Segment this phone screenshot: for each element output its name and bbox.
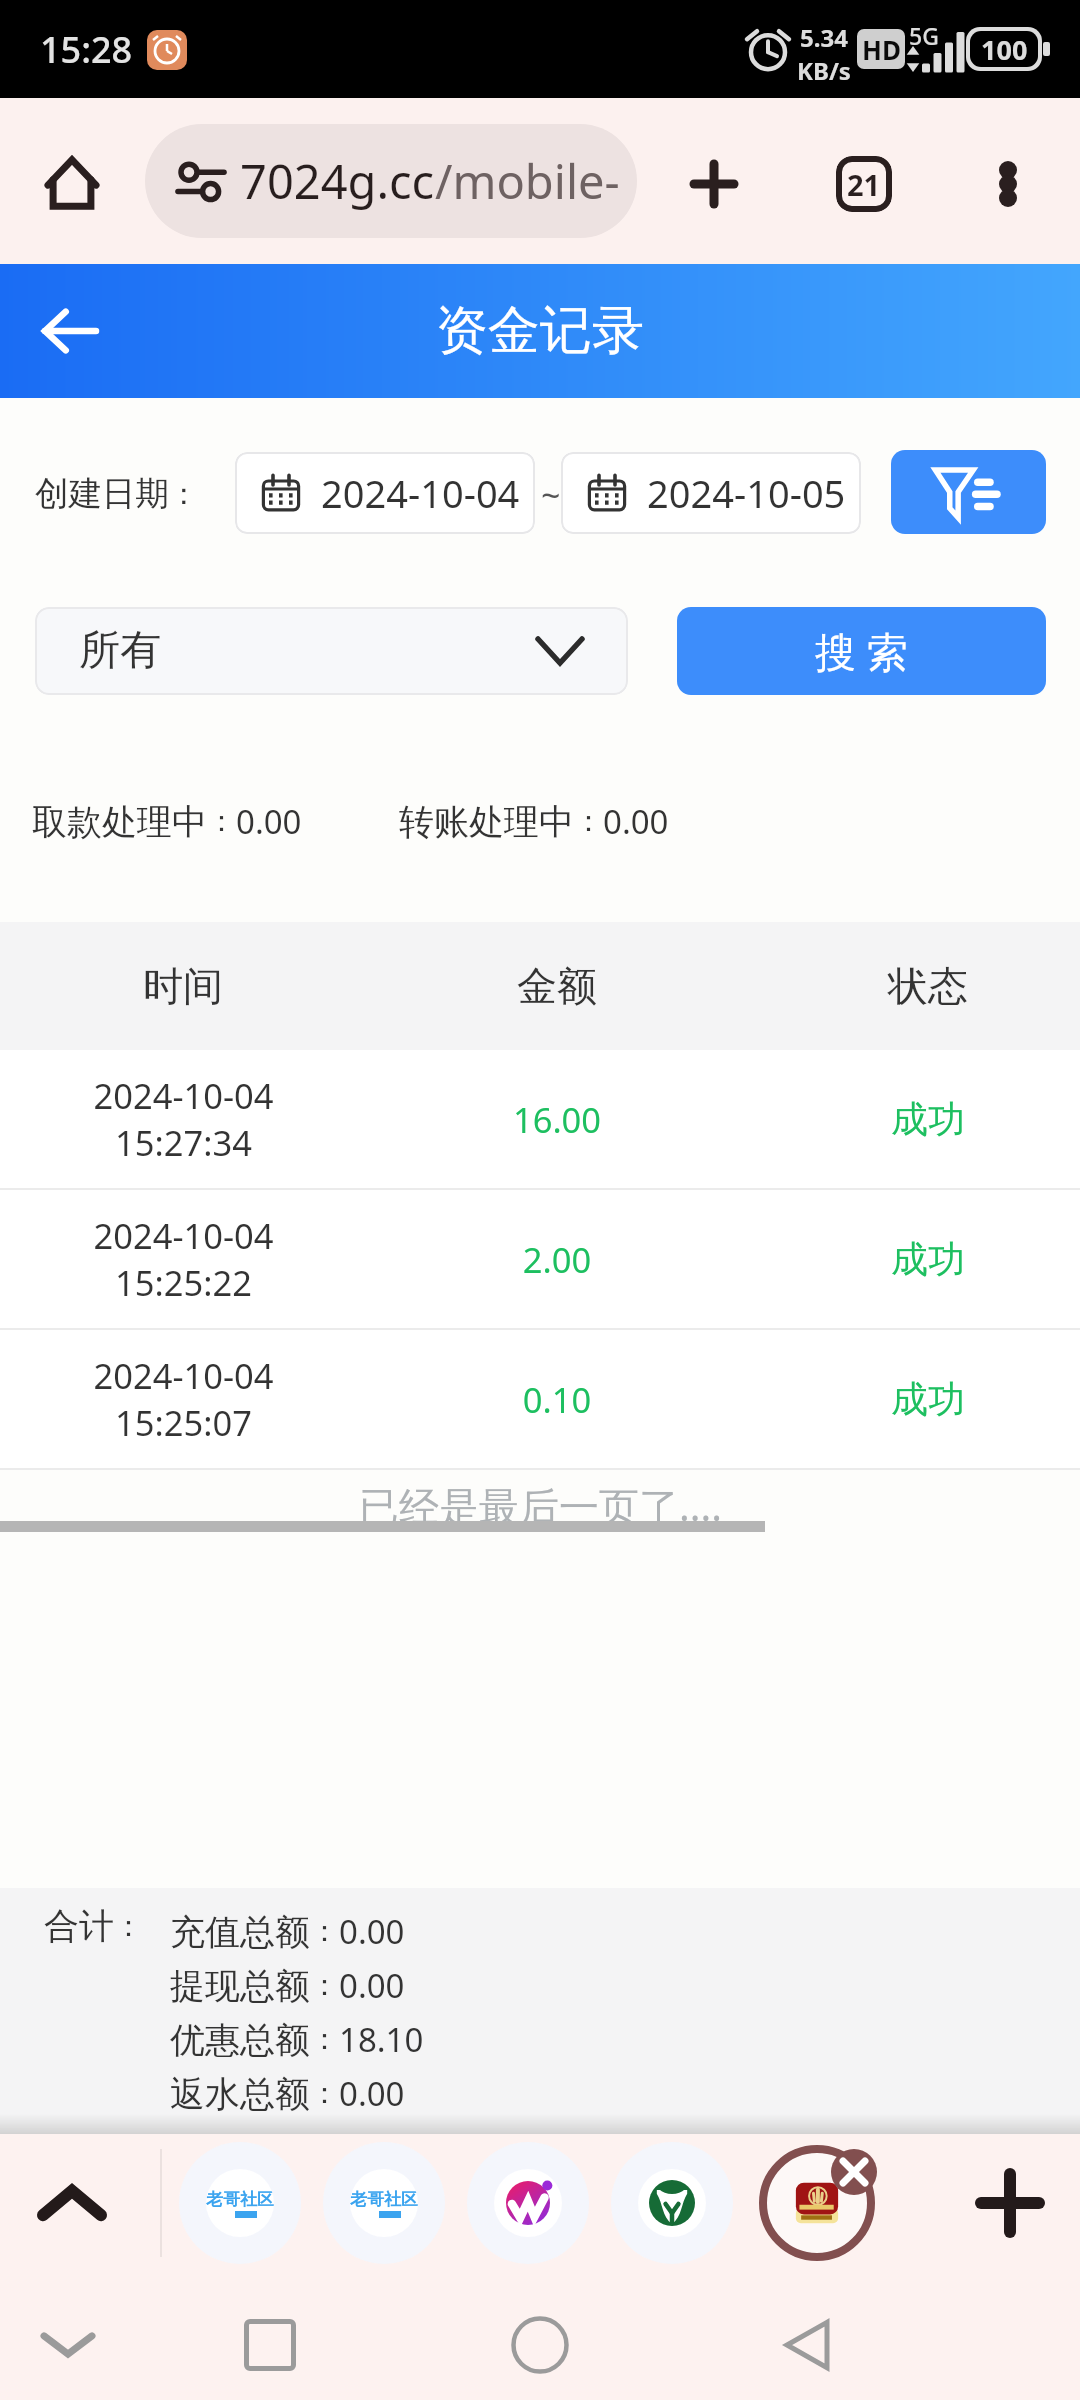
- staticText: 2024-10-04: [321, 467, 520, 519]
- button[interactable]: New tab: [666, 136, 762, 232]
- staticText: 15:28: [40, 25, 133, 74]
- button[interactable]: Open tabs: 21: [817, 137, 911, 231]
- button[interactable]: 7024g.cc: [145, 124, 637, 238]
- staticText: 成功: [768, 1376, 1080, 1423]
- staticText: 创建日期: [35, 473, 169, 515]
- staticText: 优惠总额: [170, 2018, 310, 2062]
- staticText: 资金记录: [436, 298, 644, 364]
- staticText: ：: [169, 475, 199, 513]
- button[interactable]: Filter: [891, 450, 1046, 534]
- button[interactable]: Close tab: [831, 2149, 877, 2195]
- staticText: 取款处理中: [32, 800, 207, 844]
- staticText: ：: [574, 803, 603, 840]
- staticText: 金额: [397, 961, 717, 1011]
- staticText: 成功: [768, 1096, 1080, 1143]
- button[interactable]: Back: [765, 2302, 851, 2388]
- staticText: 5G: [909, 20, 939, 51]
- staticText: 充值总额: [170, 1910, 310, 1954]
- staticText: 0.00: [339, 2071, 405, 2116]
- staticText: KB/s: [797, 54, 851, 87]
- button[interactable]: Tab 4: [611, 2142, 733, 2264]
- staticText: 2024-10-04: [93, 1212, 274, 1259]
- button[interactable]: Expand toolbar: [26, 2157, 118, 2249]
- staticText: 0.00: [603, 799, 669, 844]
- staticText: 0.10: [397, 1376, 717, 1423]
- button[interactable]: 2024-10-05: [561, 452, 861, 534]
- button[interactable]: Recent apps: [227, 2302, 313, 2388]
- button[interactable]: 搜 索: [677, 607, 1046, 695]
- staticText: 老哥社区: [206, 2189, 274, 2210]
- staticText: ：: [310, 2021, 339, 2058]
- button[interactable]: New tab: [964, 2157, 1056, 2249]
- staticText: ：: [310, 1913, 339, 1950]
- staticText: ：: [207, 803, 236, 840]
- staticText: 15:27:34: [115, 1119, 252, 1166]
- button[interactable]: 2024-10-04: [235, 452, 535, 534]
- staticText: 2024-10-04: [93, 1072, 274, 1119]
- staticText: 7024g.cc: [240, 149, 435, 213]
- staticText: 0.00: [339, 1963, 405, 2008]
- staticText: 合计: [44, 1904, 114, 1948]
- staticText: 15:25:22: [115, 1259, 252, 1306]
- staticText: 0.00: [236, 799, 302, 844]
- button[interactable]: Back: [22, 284, 116, 378]
- button[interactable]: Tab 2: [323, 2142, 445, 2264]
- staticText: ~: [541, 472, 561, 518]
- button[interactable]: 所有: [35, 607, 628, 695]
- staticText: 5.34: [800, 21, 848, 54]
- staticText: 2.00: [397, 1236, 717, 1283]
- staticText: ：: [114, 1908, 143, 1945]
- staticText: 成功: [768, 1236, 1080, 1283]
- staticText: 100: [981, 31, 1028, 67]
- staticText: 18.10: [339, 2017, 424, 2062]
- button[interactable]: Hide toolbar: [25, 2302, 111, 2388]
- staticText: HD: [862, 32, 901, 67]
- staticText: 已经是最后一页了....: [359, 1478, 722, 1522]
- staticText: 16.00: [397, 1096, 717, 1143]
- staticText: ：: [310, 2075, 339, 2112]
- staticText: 状态: [768, 961, 1080, 1011]
- staticText: 转账处理中: [399, 800, 574, 844]
- staticText: 2024-10-04: [93, 1352, 274, 1399]
- button[interactable]: Current tab 7024.cc: [758, 2144, 876, 2262]
- staticText: 提现总额: [170, 1964, 310, 2008]
- staticText: 所有: [79, 625, 161, 677]
- staticText: 21: [847, 165, 881, 204]
- staticText: 15:25:07: [115, 1399, 252, 1446]
- staticText: 2024-10-05: [647, 467, 846, 519]
- button[interactable]: More options: [963, 139, 1053, 229]
- staticText: 搜 索: [815, 623, 908, 679]
- button[interactable]: Tab 3: [467, 2142, 589, 2264]
- staticText: /mobile-: [435, 149, 620, 213]
- staticText: 返水总额: [170, 2072, 310, 2116]
- staticText: 老哥社区: [350, 2189, 418, 2210]
- staticText: 0.00: [339, 1909, 405, 1954]
- staticText: 时间: [23, 961, 343, 1011]
- button[interactable]: Home: [497, 2302, 583, 2388]
- button[interactable]: Home: [29, 140, 115, 226]
- staticText: ：: [310, 1967, 339, 2004]
- button[interactable]: Tab 1: [179, 2142, 301, 2264]
